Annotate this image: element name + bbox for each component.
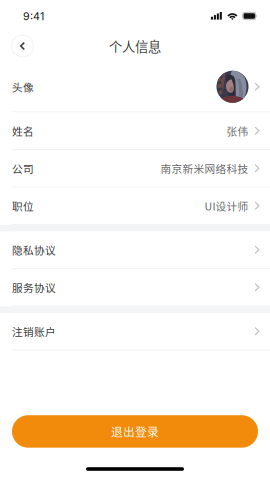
- staticText: 注销账户: [12, 323, 56, 339]
- button[interactable]: Back: [6, 30, 39, 62]
- button[interactable]: 公司: [0, 150, 270, 187]
- staticText: UI设计师: [204, 198, 248, 213]
- staticText: 头像: [12, 79, 34, 94]
- staticText: 职位: [12, 198, 34, 213]
- button[interactable]: 姓名: [0, 112, 270, 150]
- staticText: 退出登录: [111, 423, 159, 440]
- button[interactable]: 退出登录: [12, 415, 258, 448]
- staticText: 公司: [12, 160, 34, 176]
- staticText: 隐私协议: [12, 242, 56, 257]
- button[interactable]: 职位: [0, 187, 270, 225]
- button[interactable]: 注销账户: [0, 313, 270, 350]
- button[interactable]: 头像: [0, 62, 270, 112]
- staticText: 姓名: [12, 123, 34, 138]
- button[interactable]: 服务协议: [0, 269, 270, 306]
- staticText: 9:41: [23, 10, 44, 23]
- staticText: 张伟: [226, 123, 248, 138]
- staticText: 服务协议: [12, 279, 56, 295]
- button[interactable]: 隐私协议: [0, 231, 270, 269]
- staticText: 个人信息: [109, 36, 161, 56]
- staticText: 南京新米网络科技: [160, 160, 248, 176]
